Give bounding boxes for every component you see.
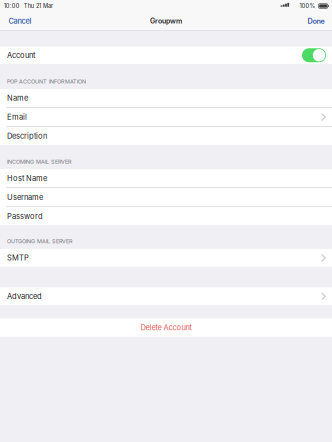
staticText: Mar — [43, 3, 53, 9]
staticText: Username — [7, 193, 43, 202]
staticText: Host Name — [7, 174, 47, 183]
staticText: Cancel — [9, 16, 32, 25]
staticText: SMTP — [7, 253, 29, 262]
staticText: Description — [7, 132, 47, 141]
button[interactable]: Account — [0, 46, 332, 64]
staticText: Advanced — [7, 292, 42, 301]
button[interactable]: Username — [0, 188, 332, 206]
staticText: Name — [7, 93, 28, 103]
button[interactable]: Description — [0, 127, 332, 145]
button[interactable]: Email — [0, 108, 332, 126]
staticText: Thu — [24, 3, 34, 9]
button[interactable]: Host Name — [0, 169, 332, 187]
staticText: 10:00 — [4, 3, 20, 9]
staticText: Email — [7, 112, 27, 122]
staticText: INCOMING MAIL SERVER — [7, 158, 72, 165]
button[interactable]: Advanced — [0, 287, 332, 305]
staticText: Done — [307, 17, 324, 25]
button[interactable]: Done — [298, 12, 332, 30]
staticText: 100% — [299, 3, 315, 9]
staticText: Account — [7, 51, 35, 60]
button[interactable]: Password — [0, 207, 332, 225]
button[interactable]: Name — [0, 89, 332, 107]
staticText: POP ACCOUNT INFORMATION — [7, 78, 86, 85]
staticText: Delete Account — [140, 323, 191, 332]
staticText: OUTGOING MAIL SERVER — [7, 238, 73, 245]
button[interactable]: SMTP — [0, 249, 332, 267]
staticText: Groupwm — [150, 17, 182, 25]
staticText: Password — [7, 212, 43, 221]
button[interactable]: Cancel — [0, 12, 40, 30]
staticText: 21 — [36, 3, 41, 9]
button[interactable]: Delete Account — [0, 318, 332, 337]
